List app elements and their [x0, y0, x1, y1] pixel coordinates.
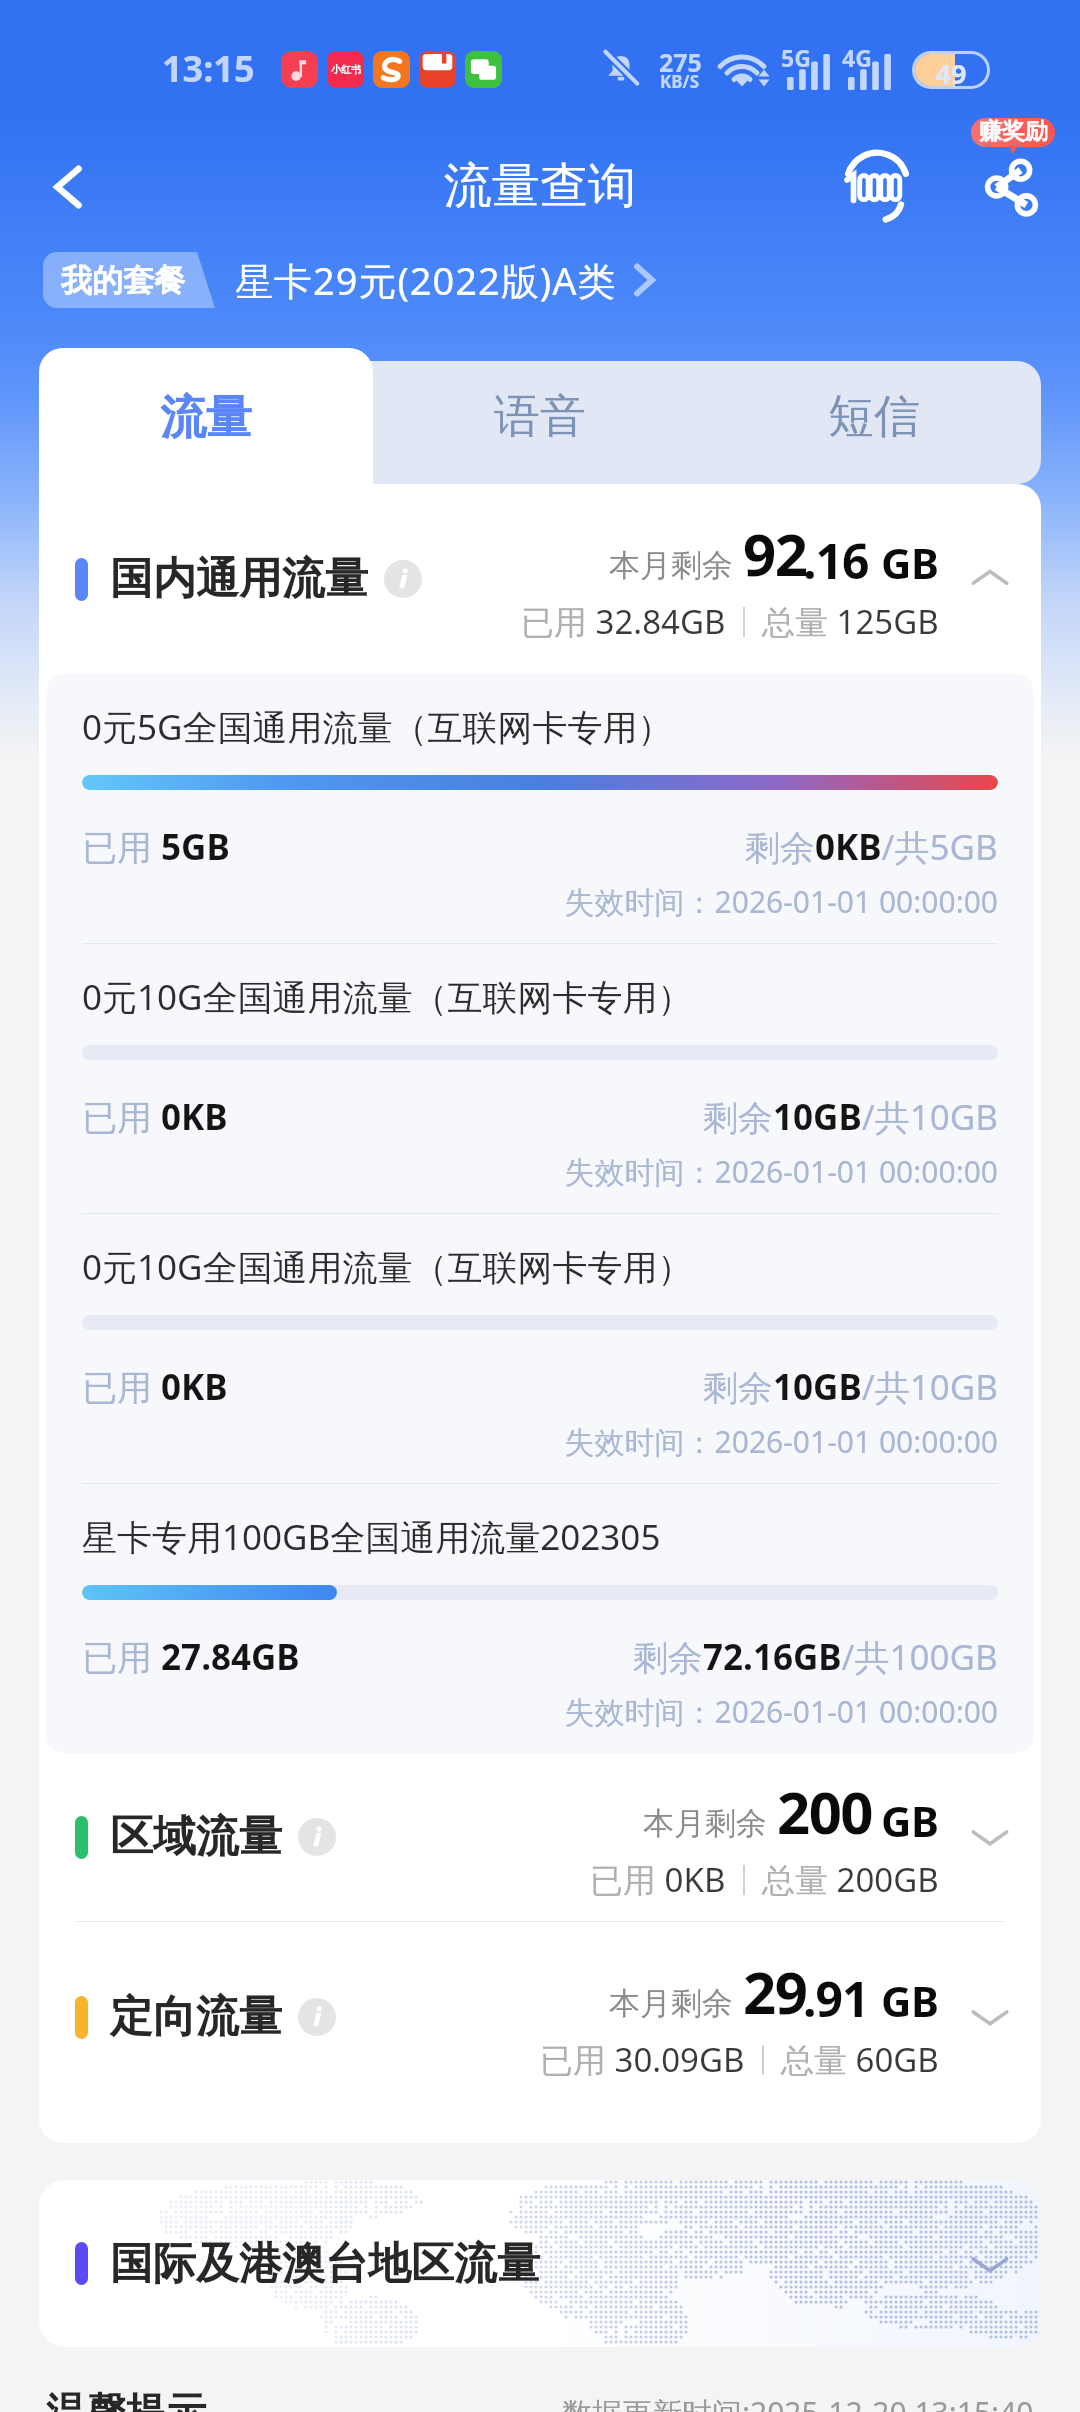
- button[interactable]: 国内通用流量: [39, 484, 1041, 674]
- staticText: 流量: [160, 389, 252, 447]
- staticText: 已用 27.84GB: [82, 1633, 300, 1681]
- staticText: 失效时间：2026-01-01 00:00:00: [82, 1691, 998, 1732]
- staticText: 本月剩余: [609, 546, 733, 585]
- staticText: GB: [881, 1792, 939, 1849]
- button[interactable]: 赚奖励: [971, 118, 1055, 147]
- staticText: 数据更新时间:2025-12-20 13:15:40: [562, 2392, 1034, 2412]
- staticText: 0元10G全国通用流量（互联网卡专用）: [82, 973, 693, 1021]
- button[interactable]: Customer service 10000: [829, 139, 925, 235]
- staticText: 200: [777, 1772, 873, 1851]
- staticText: 本月剩余: [643, 1804, 767, 1843]
- staticText: 92: [743, 514, 807, 593]
- staticText: 国际及港澳台地区流量: [110, 2237, 540, 2291]
- staticText: 语音: [494, 388, 586, 446]
- staticText: GB: [881, 1972, 939, 2029]
- button[interactable]: 流量: [39, 348, 373, 484]
- staticText: 定向流量: [110, 1990, 282, 2044]
- staticText: 0元5G全国通用流量（互联网卡专用）: [82, 703, 673, 751]
- staticText: 剩余72.16GB/共100GB: [633, 1633, 998, 1681]
- staticText: 已用 0KB: [82, 1093, 228, 1141]
- staticText: 5G: [781, 42, 811, 73]
- button[interactable]: 定向流量: [39, 1922, 1041, 2112]
- button[interactable]: 语音: [373, 361, 707, 484]
- staticText: 短信: [828, 388, 920, 446]
- staticText: 0元10G全国通用流量（互联网卡专用）: [82, 1243, 693, 1291]
- staticText: 总量 125GB: [762, 599, 939, 644]
- staticText: 本月剩余: [609, 1984, 733, 2023]
- staticText: 星卡专用100GB全国通用流量202305: [82, 1513, 661, 1561]
- button[interactable]: Back: [32, 151, 104, 223]
- staticText: 已用 32.84GB: [521, 599, 726, 644]
- staticText: 小红书: [331, 63, 361, 76]
- staticText: 失效时间：2026-01-01 00:00:00: [82, 1151, 998, 1192]
- staticText: 49: [915, 55, 987, 87]
- staticText: 13:15: [162, 44, 255, 93]
- staticText: 总量 60GB: [781, 2037, 939, 2082]
- staticText: 失效时间：2026-01-01 00:00:00: [82, 1421, 998, 1462]
- staticText: 星卡29元(2022版)A类: [235, 254, 617, 306]
- staticText: 赚奖励: [979, 118, 1048, 146]
- staticText: 剩余0KB/共5GB: [745, 823, 998, 871]
- button[interactable]: 区域流量: [39, 1753, 1041, 1921]
- staticText: 275: [659, 45, 702, 79]
- staticText: 我的套餐: [61, 261, 185, 300]
- staticText: KB/S: [660, 70, 700, 93]
- staticText: .16: [803, 528, 869, 593]
- staticText: 已用 5GB: [82, 823, 230, 871]
- staticText: 剩余10GB/共10GB: [703, 1363, 998, 1411]
- staticText: .91: [803, 1966, 869, 2031]
- staticText: 区域流量: [110, 1810, 282, 1864]
- staticText: 国内通用流量: [110, 552, 368, 606]
- button[interactable]: Share: [963, 139, 1059, 235]
- staticText: GB: [881, 534, 939, 591]
- staticText: 流量查询: [0, 156, 1080, 216]
- staticText: 已用 0KB: [590, 1857, 726, 1902]
- button[interactable]: 星卡29元(2022版)A类: [235, 254, 655, 306]
- button[interactable]: 国际及港澳台地区流量: [39, 2180, 1041, 2347]
- staticText: 温馨提示: [46, 2387, 206, 2412]
- staticText: 29: [743, 1952, 807, 2031]
- staticText: 失效时间：2026-01-01 00:00:00: [82, 881, 998, 922]
- staticText: 总量 200GB: [762, 1857, 939, 1902]
- staticText: 已用 30.09GB: [540, 2037, 745, 2082]
- staticText: 已用 0KB: [82, 1363, 228, 1411]
- staticText: 4G: [842, 42, 872, 73]
- button[interactable]: 短信: [707, 361, 1041, 484]
- staticText: 剩余10GB/共10GB: [703, 1093, 998, 1141]
